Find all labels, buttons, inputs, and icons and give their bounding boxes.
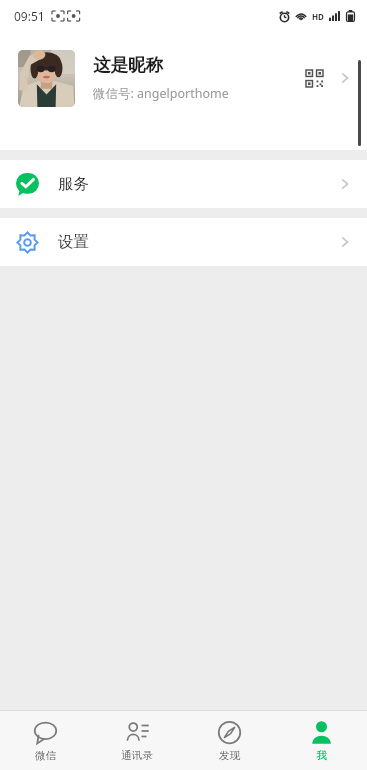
staticText: HD [312, 11, 324, 22]
staticText: 服务 [58, 174, 337, 194]
staticText: 设置 [58, 232, 337, 252]
button[interactable]: 通讯录 [91, 711, 183, 770]
staticText: 发现 [219, 749, 240, 762]
button[interactable]: 发现 [183, 711, 275, 770]
button[interactable]: 我 [275, 711, 367, 770]
staticText: 微信 [35, 749, 56, 762]
staticText: 这是昵称 [93, 54, 163, 76]
button[interactable]: 服务 [0, 160, 367, 208]
staticText: 09:51 [14, 8, 45, 24]
staticText: 微信号: angelporthome [93, 85, 229, 102]
button[interactable]: My QR code [297, 61, 331, 95]
button[interactable]: 这是昵称 [0, 32, 367, 124]
button[interactable]: 微信 [0, 711, 91, 770]
button[interactable]: 设置 [0, 218, 367, 266]
staticText: 通讯录 [121, 749, 153, 762]
staticText: 我 [316, 749, 327, 762]
